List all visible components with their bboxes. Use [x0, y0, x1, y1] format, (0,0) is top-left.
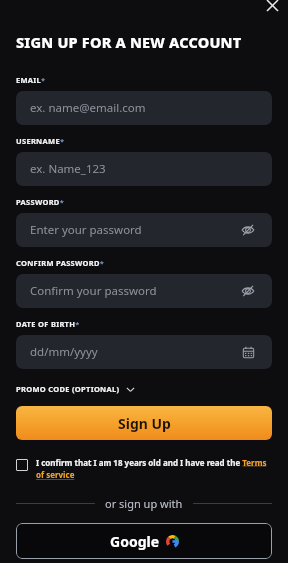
- staticText: I confirm that I am 18 years old and I h…: [36, 457, 272, 481]
- staticText: EMAIL*: [16, 75, 46, 85]
- staticText: USERNAME*: [16, 136, 65, 146]
- button[interactable]: PROMO CODE (OPTIONAL): [16, 382, 135, 396]
- staticText: Enter your password: [30, 222, 142, 238]
- button[interactable]: Pick date: [238, 342, 258, 362]
- staticText: CONFIRM PASSWORD*: [16, 258, 105, 268]
- button[interactable]: Enter your password: [16, 213, 272, 247]
- staticText: Sign Up: [118, 414, 171, 433]
- staticText: dd/mm/yyyy: [30, 344, 98, 360]
- button[interactable]: ex. name@email.com: [16, 91, 272, 125]
- button[interactable]: ex. Name_123: [16, 152, 272, 186]
- staticText: or sign up with: [105, 496, 183, 511]
- button[interactable]: Google: [16, 523, 272, 559]
- staticText: ex. name@email.com: [30, 100, 146, 116]
- staticText: DATE OF BIRTH*: [16, 319, 80, 329]
- staticText: Confirm your password: [30, 283, 157, 299]
- button[interactable]: Show password: [238, 220, 258, 240]
- other: Confirm age and terms: [16, 459, 28, 471]
- button[interactable]: Close: [260, 0, 284, 17]
- staticText: ex. Name_123: [30, 161, 106, 177]
- button[interactable]: dd/mm/yyyy: [16, 335, 272, 369]
- staticText: Google: [110, 532, 160, 551]
- button[interactable]: Confirm age and terms: [16, 457, 272, 481]
- staticText: PROMO CODE (OPTIONAL): [16, 384, 120, 394]
- staticText: SIGN UP FOR A NEW ACCOUNT: [16, 32, 242, 52]
- staticText: PASSWORD*: [16, 197, 65, 207]
- button[interactable]: Sign Up: [16, 406, 272, 440]
- button[interactable]: Show confirm password: [238, 281, 258, 301]
- button[interactable]: Confirm your password: [16, 274, 272, 308]
